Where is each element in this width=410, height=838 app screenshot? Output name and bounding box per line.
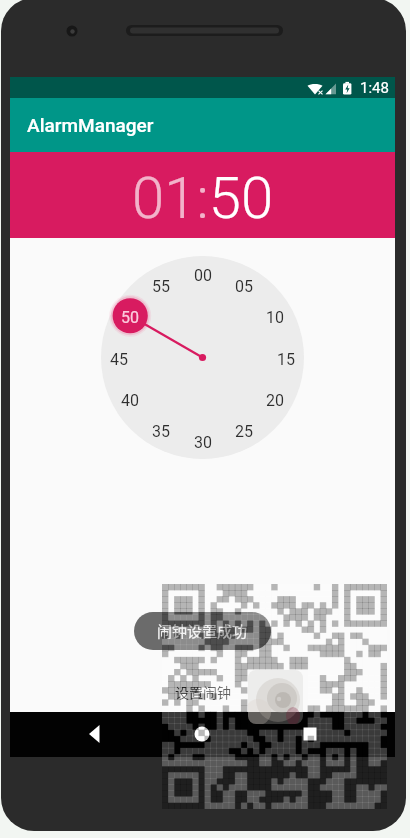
- staticText: 设置闹钟: [175, 682, 231, 702]
- staticText: 10: [266, 308, 284, 327]
- button[interactable]: 设置闹钟: [161, 675, 245, 709]
- staticText: 45: [110, 350, 128, 369]
- button[interactable]: Back: [73, 712, 117, 756]
- staticText: 1:48: [360, 79, 389, 97]
- button[interactable]: 05: [228, 276, 260, 296]
- staticText: 闹钟设置成功: [157, 620, 248, 642]
- staticText: 00: [194, 266, 212, 285]
- button[interactable]: 01:50: [132, 164, 274, 232]
- staticText: 35: [152, 422, 170, 441]
- staticText: AlarmManager: [27, 114, 154, 136]
- staticText: 30: [194, 433, 212, 452]
- button[interactable]: 55: [145, 276, 177, 296]
- staticText: 15: [277, 350, 295, 369]
- button[interactable]: Home: [180, 712, 224, 756]
- button[interactable]: 40: [114, 390, 146, 410]
- button[interactable]: 50: [114, 307, 146, 327]
- button[interactable]: 45: [103, 349, 135, 369]
- staticText: 55: [152, 277, 170, 296]
- staticText: 20: [266, 391, 284, 410]
- staticText: 25: [235, 422, 253, 441]
- staticText: 40: [121, 391, 139, 410]
- staticText: 50: [121, 308, 139, 327]
- button[interactable]: 20: [259, 390, 291, 410]
- button[interactable]: Recent apps: [288, 712, 332, 756]
- button[interactable]: 25: [228, 421, 260, 441]
- button[interactable]: 00: [187, 265, 219, 285]
- staticText: 05: [235, 277, 253, 296]
- button[interactable]: 15: [270, 349, 302, 369]
- button[interactable]: 30: [187, 432, 219, 452]
- button[interactable]: 35: [145, 421, 177, 441]
- button[interactable]: 10: [259, 307, 291, 327]
